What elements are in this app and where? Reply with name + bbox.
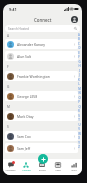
staticText: O — [78, 96, 81, 100]
staticText: Connect — [22, 169, 31, 172]
staticText: F — [78, 55, 80, 59]
button[interactable]: Alun Salt — [5, 51, 78, 61]
staticText: L — [78, 82, 80, 86]
staticText: X — [78, 136, 80, 140]
staticText: Messages — [5, 169, 16, 172]
button[interactable]: Profile — [71, 16, 78, 23]
staticText: Sam Cox — [17, 134, 31, 139]
staticText: K — [78, 78, 80, 82]
staticText: B — [78, 37, 80, 41]
staticText: A — [78, 33, 80, 37]
staticText: Search Hosted — [8, 27, 30, 31]
button[interactable]: Sam Cox — [5, 131, 78, 141]
button[interactable]: George LE58 — [5, 91, 78, 101]
staticText: G — [78, 60, 81, 64]
button[interactable]: Add — [38, 154, 48, 164]
button[interactable]: Mark Otay — [5, 111, 78, 121]
button[interactable]: Messages — [3, 159, 18, 175]
button[interactable]: Frankie Worthington — [5, 71, 78, 81]
staticText: Events — [39, 169, 46, 172]
staticText: Alexander Kanary — [17, 42, 46, 47]
staticText: News — [55, 169, 61, 172]
staticText: Mark Otay — [17, 114, 34, 119]
staticText: Sam Jeff — [17, 146, 30, 151]
staticText: Z — [78, 145, 80, 149]
staticText: I — [79, 69, 80, 73]
staticText: F — [7, 65, 9, 69]
staticText: N — [78, 91, 81, 95]
button[interactable]: Sam Jeff — [5, 143, 78, 153]
staticText: More — [71, 169, 77, 172]
staticText: George LE58 — [17, 94, 38, 99]
staticText: R — [78, 109, 80, 113]
staticText: J — [79, 73, 80, 77]
staticText: Frankie Worthington — [17, 74, 50, 79]
staticText: V — [78, 127, 80, 131]
staticText: W — [78, 132, 81, 136]
button[interactable]: Connect — [18, 159, 34, 175]
button[interactable]: Search Hosted — [5, 25, 80, 32]
staticText: 9:41 — [9, 7, 17, 12]
button[interactable]: More — [66, 159, 82, 175]
staticText: S — [78, 114, 80, 118]
button[interactable]: Events — [34, 159, 50, 175]
staticText: A — [7, 34, 10, 38]
staticText: Connect — [34, 17, 52, 23]
staticText: C — [78, 42, 80, 46]
button[interactable]: Alexander Kanary — [5, 39, 78, 49]
staticText: D — [78, 46, 81, 50]
staticText: M — [78, 87, 81, 91]
staticText: Alun Salt — [17, 54, 31, 59]
staticText: H — [78, 64, 81, 68]
staticText: M — [7, 105, 10, 109]
staticText: T — [78, 118, 80, 122]
staticText: P — [78, 100, 80, 104]
staticText: E — [78, 51, 80, 55]
staticText: Y — [78, 141, 80, 145]
staticText: U — [78, 123, 81, 127]
staticText: Q — [78, 105, 81, 109]
button[interactable]: News — [50, 159, 66, 175]
staticText: S — [7, 125, 9, 129]
staticText: G — [7, 85, 10, 89]
